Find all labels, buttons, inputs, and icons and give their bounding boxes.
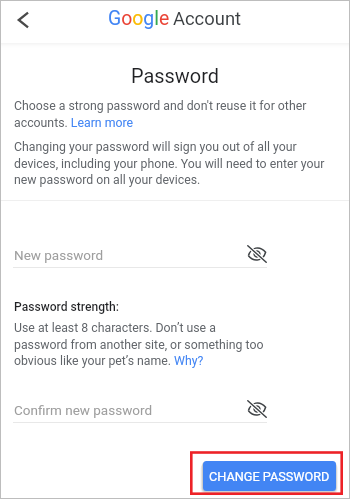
staticText: Choose a strong password and don't reuse… <box>14 99 338 130</box>
button[interactable]: CHANGE PASSWORD <box>203 461 336 491</box>
staticText: Confirm new password <box>14 402 153 418</box>
staticText: Use at least 8 characters. Don’t use a p… <box>14 321 266 368</box>
staticText: Google <box>108 7 170 30</box>
staticText: CHANGE PASSWORD <box>209 469 330 484</box>
staticText: Account <box>173 8 242 30</box>
button[interactable]: Back <box>8 5 38 35</box>
staticText: Changing your password will sign you out… <box>14 140 338 187</box>
staticText: New password <box>14 247 104 263</box>
staticText: Password <box>0 65 350 88</box>
button[interactable]: Show confirm password <box>245 398 269 420</box>
button[interactable]: Show new password <box>245 243 269 265</box>
staticText: Password strength: <box>14 300 120 314</box>
